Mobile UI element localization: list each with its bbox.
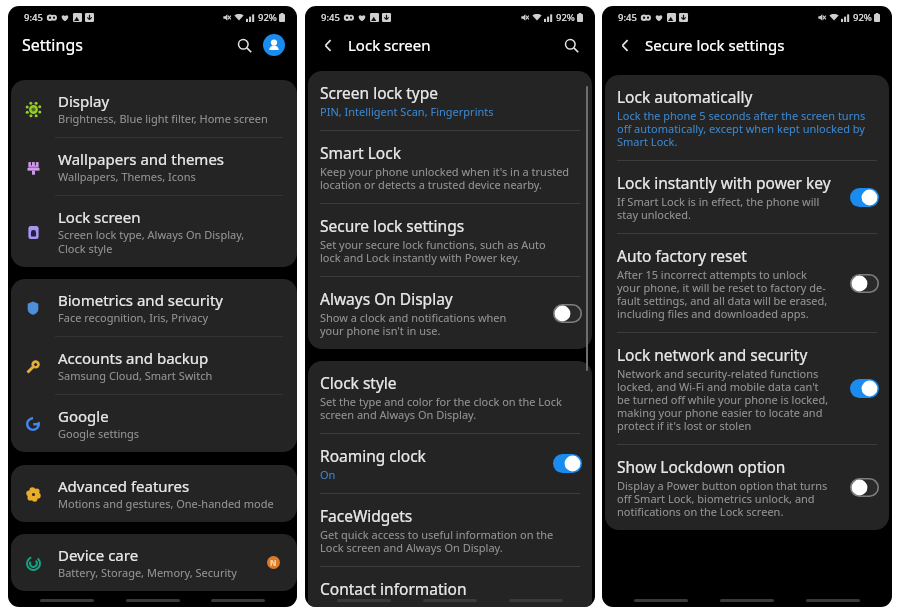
button[interactable]: Switch off	[850, 478, 879, 497]
staticText: 92%	[853, 11, 872, 24]
button[interactable]: Lock automatically	[605, 75, 889, 161]
staticText: Samsung Cloud, Smart Switch	[58, 368, 213, 383]
button[interactable]: Smart Lock	[308, 131, 592, 204]
button[interactable]: Google	[11, 395, 297, 452]
button[interactable]: Screen lock type	[308, 71, 592, 131]
button[interactable]: Lock network and security	[605, 333, 889, 445]
staticText: Wallpapers and themes	[58, 149, 225, 169]
button[interactable]: Contact information	[308, 567, 592, 607]
staticText: 9:45	[24, 11, 43, 24]
button[interactable]: Switch on	[850, 188, 879, 207]
staticText: Display a Power button option that turns…	[617, 478, 828, 519]
staticText: If Smart Lock is in effect, the phone wi…	[617, 194, 820, 222]
button[interactable]: Lock screen	[11, 196, 297, 267]
staticText: Secure lock settings	[320, 215, 465, 236]
staticText: Show a clock and notifications when your…	[320, 310, 507, 338]
button[interactable]: Display	[11, 80, 297, 138]
button[interactable]: Advanced features	[11, 465, 297, 522]
staticText: Display	[58, 91, 110, 111]
staticText: Contact information	[320, 578, 467, 596]
button[interactable]: Navigate up	[614, 34, 636, 56]
staticText: Auto factory reset	[617, 245, 747, 266]
staticText: Lock screen	[348, 35, 431, 55]
staticText: Always On Display	[320, 288, 453, 309]
staticText: 92%	[556, 11, 575, 24]
staticText: N	[270, 557, 277, 568]
button[interactable]: Wallpapers and themes	[11, 138, 297, 196]
button[interactable]: Account profile	[263, 34, 285, 56]
button[interactable]: Auto factory reset	[605, 234, 889, 333]
staticText: Roaming clock	[320, 445, 426, 466]
staticText: Show Lockdown option	[617, 456, 786, 477]
staticText: On	[320, 467, 336, 482]
staticText: Screen lock type, Always On Display, Clo…	[58, 227, 245, 256]
button[interactable]: Biometrics and security	[11, 279, 297, 337]
staticText: Keep your phone unlocked when it's in a …	[320, 164, 570, 192]
staticText: Lock the phone 5 seconds after the scree…	[617, 108, 866, 149]
staticText: Lock screen	[58, 207, 141, 227]
staticText: Network and security-related functions l…	[617, 366, 829, 433]
staticText: Clock style	[320, 372, 397, 393]
staticText: Accounts and backup	[58, 348, 209, 368]
staticText: Get quick access to useful information o…	[320, 527, 554, 555]
staticText: Battery, Storage, Memory, Security	[58, 565, 237, 580]
staticText: After 15 incorrect attempts to unlock yo…	[617, 267, 828, 321]
button[interactable]: Switch on	[850, 379, 879, 398]
staticText: Set your secure lock functions, such as …	[320, 237, 546, 265]
button[interactable]: Always On Display	[308, 277, 592, 349]
button[interactable]: Search	[231, 32, 257, 58]
staticText: PIN, Intelligent Scan, Fingerprints	[320, 104, 494, 119]
staticText: Secure lock settings	[645, 35, 785, 55]
button[interactable]: Roaming clock	[308, 434, 592, 494]
button[interactable]: Switch off	[553, 304, 582, 323]
button[interactable]: Search	[559, 33, 583, 57]
button[interactable]: Clock style	[308, 361, 592, 434]
staticText: Screen lock type	[320, 82, 439, 103]
button[interactable]: Switch on	[553, 454, 582, 473]
staticText: 92%	[258, 11, 277, 24]
staticText: 9:45	[321, 11, 340, 24]
staticText: FaceWidgets	[320, 505, 413, 526]
button[interactable]: FaceWidgets	[308, 494, 592, 567]
staticText: Face recognition, Iris, Privacy	[58, 310, 209, 325]
button[interactable]: Accounts and backup	[11, 337, 297, 395]
staticText: Device care	[58, 545, 139, 565]
staticText: Smart Lock	[320, 142, 401, 163]
staticText: 9:45	[618, 11, 637, 24]
staticText: Lock automatically	[617, 86, 753, 107]
button[interactable]: Switch off	[850, 274, 879, 293]
button[interactable]: Secure lock settings	[308, 204, 592, 277]
staticText: Motions and gestures, One-handed mode	[58, 496, 274, 511]
staticText: Biometrics and security	[58, 290, 224, 310]
button[interactable]: Lock instantly with power key	[605, 161, 889, 234]
staticText: Brightness, Blue light filter, Home scre…	[58, 111, 268, 126]
staticText: Lock instantly with power key	[617, 172, 831, 193]
button[interactable]: Navigate up	[317, 34, 339, 56]
staticText: Wallpapers, Themes, Icons	[58, 169, 196, 184]
staticText: Advanced features	[58, 476, 190, 496]
staticText: Settings	[22, 34, 83, 56]
staticText: Set the type and color for the clock on …	[320, 394, 562, 422]
staticText: Google	[58, 406, 109, 426]
button[interactable]: Show Lockdown option	[605, 445, 889, 530]
staticText: Lock network and security	[617, 344, 808, 365]
button[interactable]: Device care	[11, 534, 297, 591]
staticText: Google settings	[58, 426, 140, 441]
